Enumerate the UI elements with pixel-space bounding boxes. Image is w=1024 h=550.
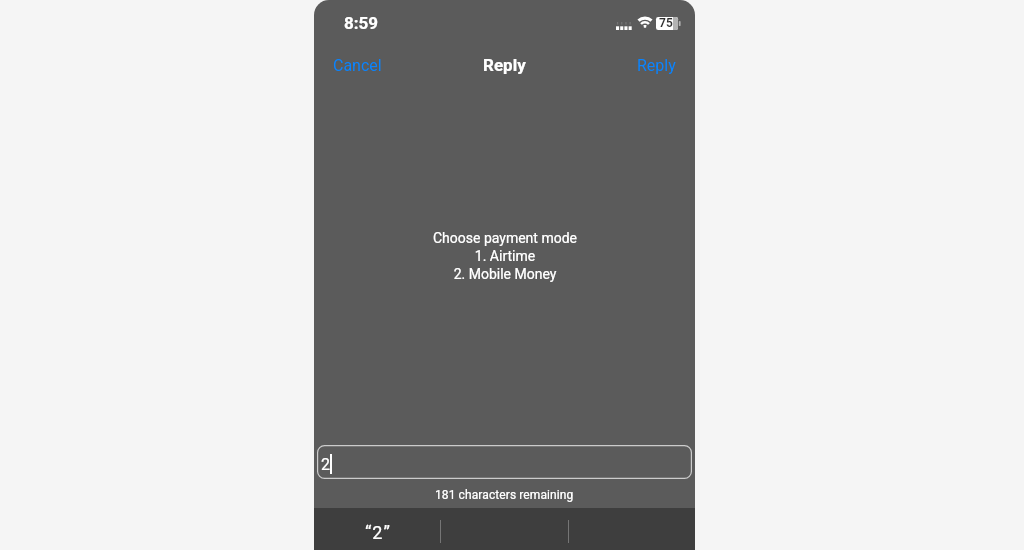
button[interactable] [568, 508, 695, 550]
button[interactable]: Cancel [325, 52, 390, 79]
button[interactable]: Reply [629, 52, 684, 79]
other: Wi-Fi [637, 16, 653, 28]
staticText: 2 [321, 455, 330, 474]
staticText: Reply [483, 55, 526, 75]
staticText: Cancel [333, 56, 382, 75]
other: Battery 75 percent [656, 16, 681, 30]
staticText: 181 characters remaining [435, 488, 574, 502]
button[interactable]: “2” [314, 508, 441, 550]
other: Cellular signal [616, 22, 633, 30]
button[interactable]: 2 [317, 445, 692, 479]
staticText: Choose payment mode 1. Airtime 2. Mobile… [433, 230, 577, 282]
staticText: 75 [659, 16, 673, 30]
staticText: Reply [637, 56, 676, 75]
staticText: “2” [365, 522, 391, 543]
staticText: 8:59 [344, 13, 379, 33]
